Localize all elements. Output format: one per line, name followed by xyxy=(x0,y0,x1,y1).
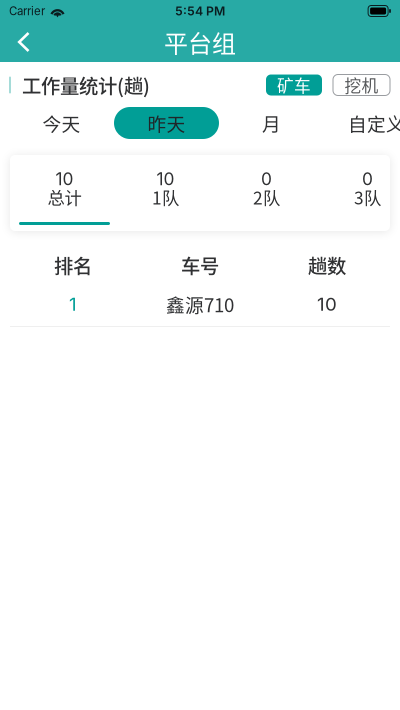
button[interactable]: 0 xyxy=(317,155,400,231)
button[interactable]: 1 xyxy=(9,282,390,326)
button[interactable]: 自定义 xyxy=(324,107,400,139)
button[interactable]: 返回 xyxy=(0,22,45,62)
staticText: 车号 xyxy=(181,251,219,279)
staticText: 趟数 xyxy=(308,251,346,279)
staticText: 3队 xyxy=(354,184,381,210)
staticText: 2队 xyxy=(253,184,280,210)
button[interactable]: 10 xyxy=(14,155,115,231)
staticText: 挖机 xyxy=(344,73,378,97)
button[interactable]: 昨天 xyxy=(114,107,219,139)
button[interactable]: 今天 xyxy=(9,107,114,139)
staticText: 昨天 xyxy=(147,109,185,136)
button[interactable]: 0 xyxy=(216,155,317,231)
staticText: Carrier xyxy=(9,4,45,18)
staticText: 1 xyxy=(69,293,77,315)
staticText: 1队 xyxy=(152,184,179,210)
staticText: 10 xyxy=(55,168,73,189)
staticText: 鑫源710 xyxy=(166,290,234,317)
staticText: 5:54 PM xyxy=(175,4,225,18)
staticText: 10 xyxy=(317,293,337,315)
staticText: 矿车 xyxy=(277,73,311,97)
button[interactable]: 矿车 xyxy=(266,74,322,95)
staticText: 平台组 xyxy=(164,25,236,59)
staticText: 0 xyxy=(362,168,373,189)
staticText: 工作量统计(趟) xyxy=(22,71,150,99)
button[interactable]: 10 xyxy=(115,155,216,231)
staticText: 排名 xyxy=(54,251,92,279)
staticText: 今天 xyxy=(42,109,80,136)
staticText: 10 xyxy=(156,168,174,189)
button[interactable]: 挖机 xyxy=(333,74,390,95)
staticText: 自定义 xyxy=(348,109,400,136)
staticText: 月 xyxy=(262,109,281,136)
staticText: 总计 xyxy=(47,184,81,210)
button[interactable]: 月 xyxy=(219,107,324,139)
staticText: 0 xyxy=(261,168,272,189)
